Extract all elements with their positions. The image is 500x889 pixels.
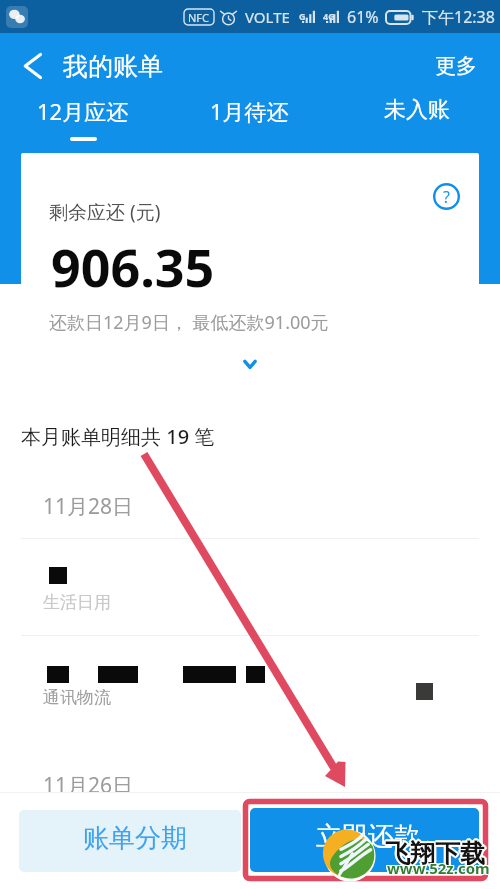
- staticText: G: [299, 10, 306, 22]
- staticText: 未入账: [384, 96, 450, 124]
- staticText: 还款日12月9日， 最低还款91.00元: [49, 310, 329, 335]
- button[interactable]: 更多: [415, 41, 500, 91]
- staticText: 飞翔下载: [385, 840, 485, 871]
- staticText: 账单分期: [83, 822, 187, 855]
- staticText: 剩余应还 (元): [49, 199, 161, 225]
- staticText: www.52z.com: [386, 857, 489, 877]
- staticText: 4G: [323, 10, 335, 22]
- staticText: www.52z.com: [387, 857, 490, 877]
- staticText: www.52z.com: [388, 859, 491, 879]
- button[interactable]: 1月待还: [166, 96, 333, 144]
- staticText: 飞翔下载: [385, 836, 485, 867]
- button[interactable]: 未入账: [333, 96, 500, 144]
- staticText: 更多: [435, 53, 477, 79]
- staticText: www.52z.com: [387, 858, 490, 878]
- staticText: www.52z.com: [386, 858, 489, 878]
- button[interactable]: Expand details: [237, 351, 263, 377]
- staticText: 下午12:38: [422, 6, 495, 28]
- staticText: 飞翔下载: [386, 837, 486, 868]
- staticText: 飞翔下载: [384, 837, 484, 868]
- staticText: 通讯物流: [43, 687, 111, 708]
- staticText: 飞翔下载: [386, 839, 486, 870]
- staticText: 飞翔下载: [385, 838, 485, 869]
- staticText: 11月26日: [43, 771, 134, 798]
- staticText: 生活日用: [43, 592, 111, 613]
- staticText: 我的账单: [63, 51, 163, 82]
- staticText: 1月待还: [210, 96, 289, 126]
- staticText: ?: [443, 186, 450, 208]
- button[interactable]: Help: [433, 183, 460, 210]
- staticText: www.52z.com: [388, 857, 491, 877]
- staticText: NFC: [188, 10, 210, 25]
- staticText: 飞翔下载: [385, 838, 485, 869]
- staticText: 12月应还: [37, 96, 129, 126]
- staticText: 飞翔下载: [386, 838, 486, 869]
- button[interactable]: Back: [0, 41, 163, 91]
- staticText: www.52z.com: [386, 859, 489, 879]
- other: Back: [23, 53, 42, 79]
- staticText: 906.35: [51, 231, 215, 302]
- button[interactable]: 12月应还: [0, 96, 166, 144]
- staticText: www.52z.com: [387, 859, 490, 879]
- staticText: 飞翔下载: [385, 837, 485, 868]
- staticText: 飞翔下载: [383, 838, 483, 869]
- staticText: www.52z.com: [387, 858, 490, 878]
- button[interactable]: 账单分期: [19, 810, 241, 872]
- staticText: 本月账单明细共 19 笔: [21, 423, 215, 450]
- button[interactable]: 立即还款: [250, 808, 479, 872]
- staticText: 立即还款: [316, 820, 420, 853]
- staticText: 飞翔下载: [387, 838, 487, 869]
- staticText: 11月28日: [43, 492, 134, 521]
- staticText: 飞翔下载: [384, 838, 484, 869]
- staticText: 飞翔下载: [384, 839, 484, 870]
- staticText: 61%: [347, 6, 379, 28]
- staticText: VOLTE: [245, 7, 290, 27]
- staticText: www.52z.com: [388, 858, 491, 878]
- staticText: 飞翔下载: [385, 839, 485, 870]
